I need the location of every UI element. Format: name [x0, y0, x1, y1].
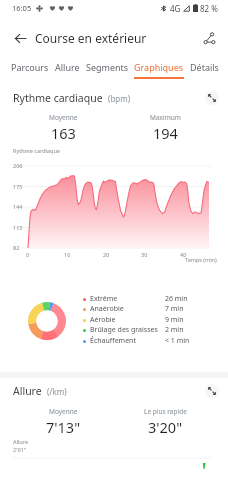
button[interactable]: Anaérobie	[83, 304, 221, 314]
staticText: 26 min	[165, 294, 188, 304]
staticText: 40	[180, 251, 187, 258]
button[interactable]: Share	[198, 27, 220, 49]
staticText: Course en extérieur	[35, 30, 147, 46]
button[interactable]: Extrême	[83, 294, 221, 304]
staticText: Détails	[190, 61, 219, 73]
staticText: Graphiques	[134, 61, 184, 73]
staticText: Parcours	[11, 61, 49, 73]
staticText: 163	[51, 123, 76, 143]
staticText: 9 min	[165, 315, 184, 325]
staticText: 113	[13, 224, 23, 231]
staticText: 2'01"	[13, 446, 26, 453]
staticText: Moyenne	[49, 407, 78, 416]
staticText: (bpm)	[108, 93, 131, 104]
staticText: Temps (min)	[185, 256, 217, 263]
staticText: Moyenne	[49, 113, 78, 122]
staticText: Échauffement	[90, 336, 136, 346]
staticText: Extrême	[90, 294, 118, 304]
staticText: 3'20"	[148, 417, 183, 437]
staticText: 30	[141, 251, 148, 258]
staticText: Allure	[13, 384, 42, 398]
staticText: 206	[13, 162, 23, 169]
staticText: 175	[13, 183, 23, 190]
staticText: 0	[26, 251, 30, 258]
staticText: Aérobie	[90, 315, 116, 325]
staticText: 10	[64, 251, 71, 258]
button[interactable]: Graphiques	[131, 58, 187, 80]
staticText: 16:05	[12, 3, 32, 13]
button[interactable]: Agrandir	[205, 384, 219, 398]
staticText: Rythme cardiaque	[13, 91, 103, 105]
staticText: 7'13"	[46, 417, 81, 437]
button[interactable]: Échauffement	[83, 336, 221, 346]
staticText: 7 min	[165, 304, 184, 314]
button[interactable]: Parcours	[10, 58, 50, 80]
staticText: 194	[153, 123, 178, 143]
button[interactable]: Allure	[52, 58, 82, 80]
staticText: Le plus rapide	[144, 407, 187, 416]
button[interactable]: Brûlage des graisses	[83, 325, 221, 335]
staticText: 82	[13, 244, 20, 251]
button[interactable]: Agrandir	[205, 91, 219, 105]
staticText: Maximum	[150, 113, 181, 122]
button[interactable]: Segments	[84, 58, 130, 80]
button[interactable]: Détails	[187, 58, 221, 80]
staticText: Anaérobie	[90, 304, 124, 314]
button[interactable]: Aérobie	[83, 315, 221, 325]
staticText: Rythme cardiaque	[13, 147, 60, 154]
staticText: (/km)	[47, 386, 67, 397]
button[interactable]: Back	[9, 27, 31, 49]
staticText: 2 min	[165, 325, 184, 335]
staticText: Segments	[86, 61, 129, 73]
staticText: 20	[103, 251, 110, 258]
staticText: Allure	[13, 438, 29, 445]
staticText: 82 %	[200, 3, 218, 14]
staticText: < 1 min	[165, 336, 190, 346]
staticText: Allure	[55, 61, 80, 73]
staticText: 144	[13, 203, 23, 210]
staticText: Brûlage des graisses	[90, 325, 158, 335]
staticText: 4G	[170, 3, 181, 14]
